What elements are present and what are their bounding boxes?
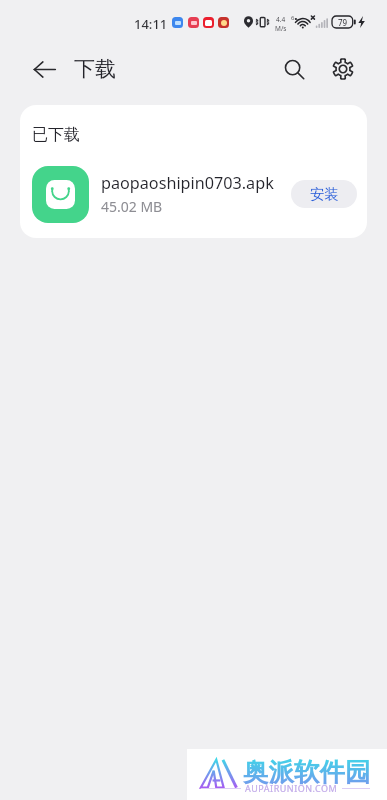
staticText: 下载 xyxy=(74,56,116,82)
staticText: 已下载 xyxy=(32,125,80,145)
button[interactable]: Search xyxy=(274,49,314,89)
staticText: AUPAIRUNION.COM xyxy=(245,782,338,794)
staticText: paopaoshipin0703.apk xyxy=(101,172,274,194)
staticText: 4.4 xyxy=(276,15,286,24)
staticText: 6 xyxy=(291,14,295,22)
button[interactable]: paopaoshipin0703.apk xyxy=(20,162,367,226)
staticText: 奥派软件园 xyxy=(243,756,371,788)
staticText: 安装 xyxy=(310,185,339,203)
staticText: 14:11 xyxy=(134,15,168,33)
button[interactable]: 安装 xyxy=(291,180,357,208)
button[interactable]: Settings xyxy=(323,49,363,89)
button[interactable]: Back xyxy=(24,49,64,89)
staticText: 79 xyxy=(338,17,348,28)
staticText: M/s xyxy=(275,24,287,33)
staticText: 45.02 MB xyxy=(101,197,163,216)
